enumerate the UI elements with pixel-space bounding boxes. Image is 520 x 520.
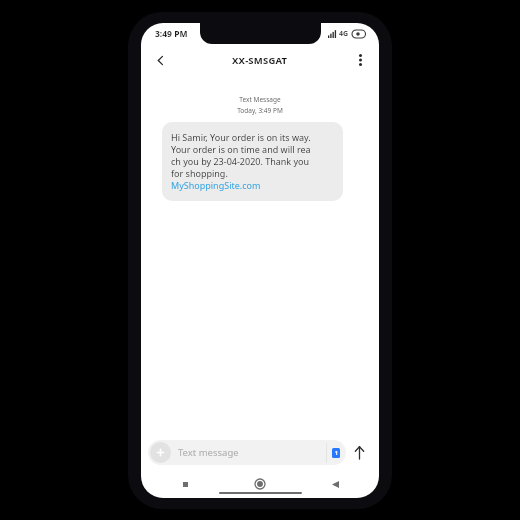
staticText: for shopping. [171, 167, 228, 179]
button[interactable]: Back [327, 476, 343, 492]
button[interactable]: More options [350, 50, 370, 70]
staticText: XX-SMSGAT [232, 54, 288, 67]
button[interactable]: MyShoppingSite.com [171, 179, 261, 191]
button[interactable]: Hi Samir, Your order is on its way. [162, 122, 343, 201]
button[interactable]: SIM 1 [332, 448, 340, 458]
button[interactable]: Add attachment [150, 442, 171, 463]
staticText: Text Message [239, 95, 281, 104]
staticText: 3:49 PM [155, 28, 188, 40]
button[interactable]: Home [251, 475, 269, 493]
button[interactable]: Send [346, 439, 372, 465]
button[interactable]: Add attachment [148, 440, 346, 465]
staticText: Hi Samir, Your order is on its way. [171, 131, 311, 143]
staticText: 4G [339, 29, 349, 39]
staticText: Today, 3:49 PM [237, 106, 283, 115]
button[interactable]: Back [149, 49, 171, 71]
staticText: Text message [178, 446, 326, 459]
staticText: 1 [335, 450, 338, 457]
staticText: Your order is on time and will rea [171, 143, 311, 155]
staticText: ch you by 23-04-2020. Thank you [171, 155, 310, 167]
button[interactable]: Recent apps [177, 476, 193, 492]
